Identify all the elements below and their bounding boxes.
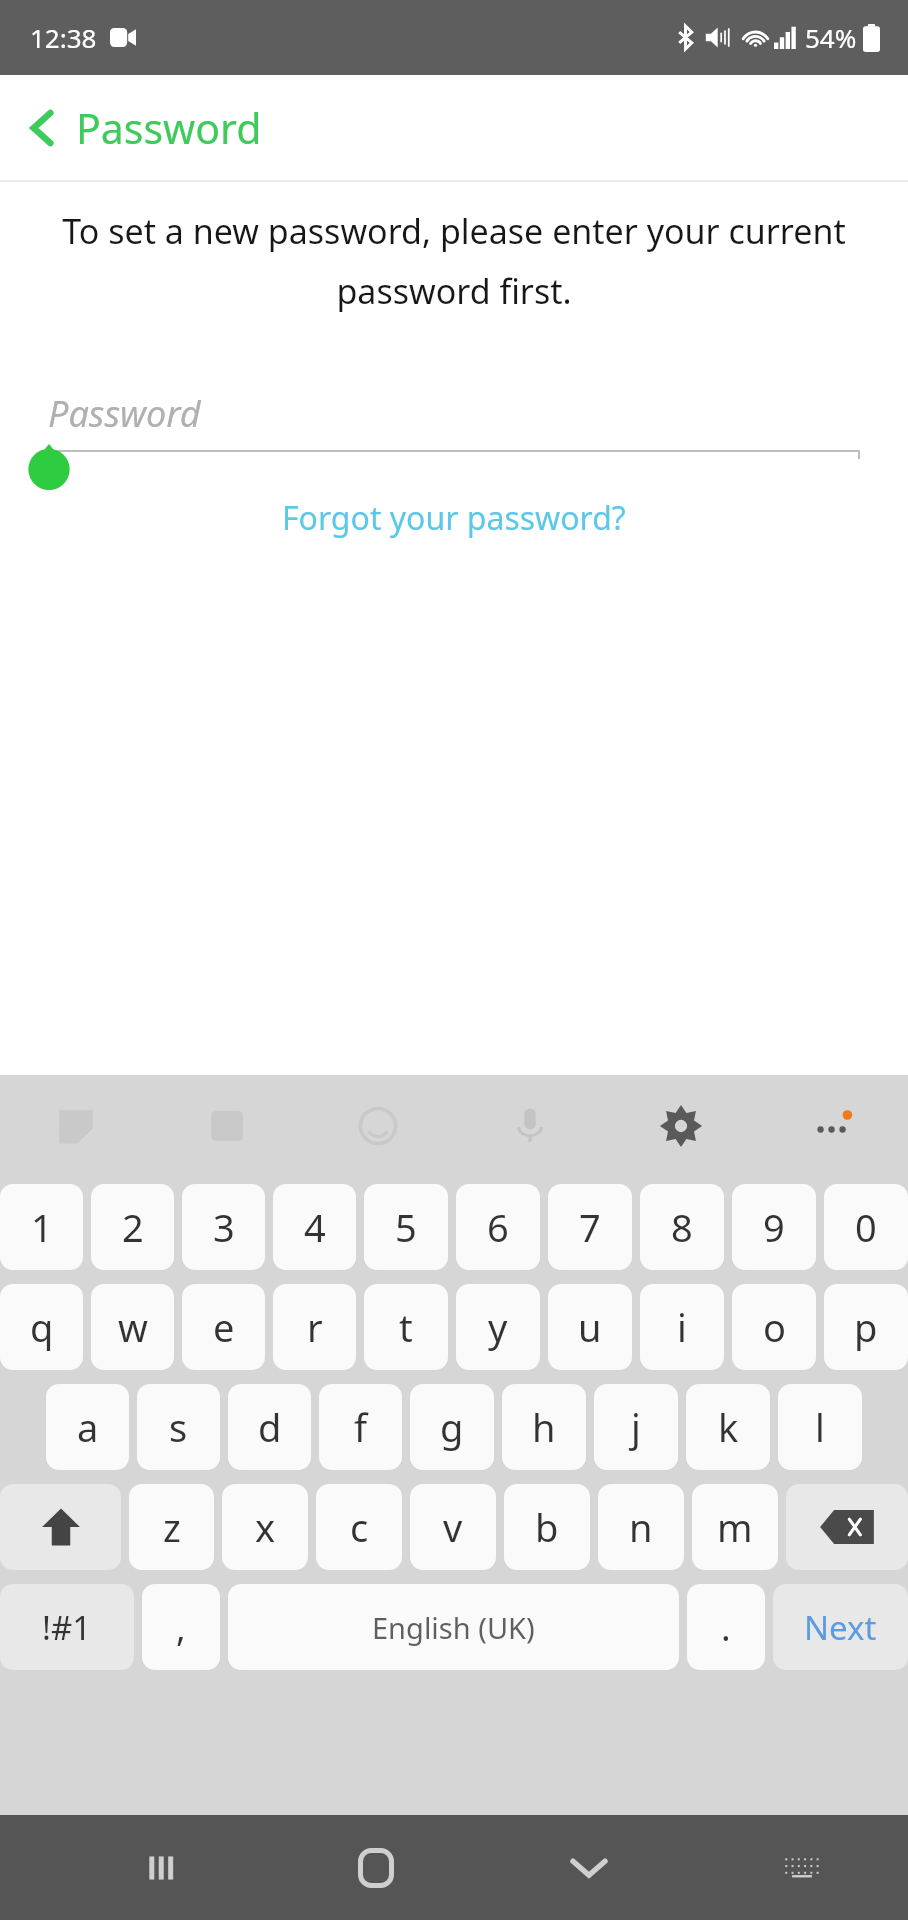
button[interactable]: Next xyxy=(773,1584,908,1670)
button[interactable]: Change keyboard xyxy=(695,1815,908,1920)
button[interactable]: !#1 xyxy=(0,1584,134,1670)
staticText: 3 xyxy=(213,1201,235,1253)
button[interactable]: Keyboard settings xyxy=(639,1084,723,1168)
staticText: 54% xyxy=(805,20,857,55)
staticText: 7 xyxy=(579,1201,601,1253)
staticText: 12:38 xyxy=(30,20,97,55)
staticText: l xyxy=(815,1401,825,1453)
staticText: y xyxy=(488,1301,508,1353)
button[interactable]: m xyxy=(692,1484,778,1570)
staticText: Forgot your password? xyxy=(282,496,626,540)
button[interactable]: l xyxy=(778,1384,862,1470)
staticText: , xyxy=(176,1603,186,1652)
button[interactable]: Shift xyxy=(0,1484,121,1570)
button[interactable]: Voice input xyxy=(488,1084,572,1168)
button[interactable]: e xyxy=(182,1284,265,1370)
staticText: v xyxy=(443,1501,463,1553)
staticText: x xyxy=(255,1501,276,1553)
button[interactable]: a xyxy=(46,1384,129,1470)
staticText: 8 xyxy=(671,1201,693,1253)
button[interactable]: n xyxy=(598,1484,684,1570)
staticText: 5 xyxy=(395,1201,417,1253)
button[interactable]: 3 xyxy=(182,1184,265,1270)
staticText: q xyxy=(30,1301,54,1353)
staticText: s xyxy=(169,1401,188,1453)
button[interactable]: s xyxy=(137,1384,220,1470)
button[interactable]: o xyxy=(732,1284,816,1370)
button[interactable]: 6 xyxy=(456,1184,540,1270)
staticText: m xyxy=(717,1501,753,1553)
staticText: n xyxy=(629,1501,653,1553)
button[interactable]: x xyxy=(222,1484,308,1570)
button[interactable]: w xyxy=(91,1284,174,1370)
staticText: 1 xyxy=(31,1201,53,1253)
button[interactable]: Home xyxy=(269,1815,482,1920)
button[interactable]: 9 xyxy=(732,1184,816,1270)
staticText: r xyxy=(307,1301,323,1353)
button[interactable]: c xyxy=(316,1484,402,1570)
staticText: Next xyxy=(804,1605,877,1650)
button[interactable]: , xyxy=(142,1584,220,1670)
staticText: w xyxy=(118,1301,148,1353)
staticText: . xyxy=(721,1603,731,1652)
button[interactable]: . xyxy=(687,1584,765,1670)
staticText: g xyxy=(440,1401,464,1453)
button[interactable]: r xyxy=(273,1284,356,1370)
button[interactable]: Password xyxy=(48,386,860,440)
button[interactable]: 5 xyxy=(364,1184,448,1270)
other: Back xyxy=(28,110,56,146)
button[interactable]: d xyxy=(228,1384,311,1470)
staticText: 0 xyxy=(855,1201,877,1253)
button[interactable]: 4 xyxy=(273,1184,356,1270)
button[interactable]: 2 xyxy=(91,1184,174,1270)
button[interactable]: Forgot your password? xyxy=(270,488,638,548)
button[interactable]: Recents xyxy=(55,1815,269,1920)
staticText: a xyxy=(77,1401,99,1453)
button[interactable]: g xyxy=(410,1384,494,1470)
button[interactable]: b xyxy=(504,1484,590,1570)
staticText: b xyxy=(535,1501,559,1553)
button[interactable]: k xyxy=(686,1384,770,1470)
staticText: i xyxy=(677,1301,687,1353)
staticText: e xyxy=(213,1301,235,1353)
button[interactable]: Hide keyboard xyxy=(482,1815,695,1920)
button[interactable]: English (UK) xyxy=(228,1584,679,1670)
staticText: English (UK) xyxy=(372,1608,535,1647)
staticText: 6 xyxy=(487,1201,509,1253)
staticText: d xyxy=(258,1401,282,1453)
button[interactable]: 7 xyxy=(548,1184,632,1270)
button[interactable]: j xyxy=(594,1384,678,1470)
button[interactable]: q xyxy=(0,1284,83,1370)
button[interactable]: Back xyxy=(0,75,908,180)
staticText: u xyxy=(578,1301,602,1353)
staticText: !#1 xyxy=(42,1605,92,1650)
button[interactable]: 8 xyxy=(640,1184,724,1270)
staticText: Password xyxy=(76,100,262,156)
button[interactable]: v xyxy=(410,1484,496,1570)
button[interactable]: 0 xyxy=(824,1184,908,1270)
staticText: j xyxy=(631,1401,641,1453)
button[interactable]: 1 xyxy=(0,1184,83,1270)
staticText: f xyxy=(354,1401,368,1453)
button[interactable]: u xyxy=(548,1284,632,1370)
staticText: h xyxy=(532,1401,556,1453)
button[interactable]: h xyxy=(502,1384,586,1470)
button[interactable]: z xyxy=(129,1484,214,1570)
staticText: c xyxy=(350,1501,369,1553)
button[interactable]: t xyxy=(364,1284,448,1370)
staticText: To set a new password, please enter your… xyxy=(26,208,882,314)
staticText: 9 xyxy=(763,1201,785,1253)
staticText: o xyxy=(763,1301,786,1353)
button[interactable]: More options xyxy=(790,1084,874,1168)
staticText: z xyxy=(163,1501,181,1553)
button[interactable]: Backspace xyxy=(786,1484,908,1570)
button[interactable]: Emoji xyxy=(336,1084,420,1168)
staticText: 4 xyxy=(304,1201,326,1253)
button[interactable]: i xyxy=(640,1284,724,1370)
button[interactable]: f xyxy=(319,1384,402,1470)
button[interactable]: Stickers xyxy=(34,1084,118,1168)
button[interactable]: y xyxy=(456,1284,540,1370)
staticText: Password xyxy=(48,389,201,438)
button[interactable]: p xyxy=(824,1284,908,1370)
button[interactable]: GIF xyxy=(185,1084,269,1168)
